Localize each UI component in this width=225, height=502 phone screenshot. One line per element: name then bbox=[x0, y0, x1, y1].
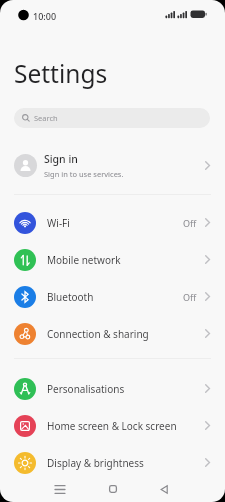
staticText: Connection & sharing bbox=[47, 327, 149, 341]
staticText: Off bbox=[183, 291, 197, 303]
button[interactable] bbox=[101, 477, 125, 501]
staticText: Wi-Fi bbox=[47, 216, 70, 230]
staticText: Personalisations bbox=[47, 382, 125, 396]
staticText: Home screen & Lock screen bbox=[47, 419, 177, 433]
staticText: Display & brightness bbox=[47, 456, 144, 470]
button[interactable] bbox=[48, 477, 72, 501]
staticText: Off bbox=[183, 217, 197, 229]
button[interactable]: Bluetooth bbox=[0, 278, 225, 315]
button[interactable] bbox=[152, 477, 176, 501]
button[interactable]: Connection & sharing bbox=[0, 315, 225, 352]
button[interactable]: Personalisations bbox=[0, 370, 225, 407]
button[interactable]: Sign in bbox=[0, 143, 225, 187]
button[interactable]: Display & brightness bbox=[0, 444, 225, 481]
staticText: Sign in to use services. bbox=[44, 169, 124, 179]
staticText: Search bbox=[34, 113, 58, 123]
button[interactable]: Mobile network bbox=[0, 241, 225, 278]
button[interactable]: Search bbox=[14, 108, 210, 128]
staticText: Settings bbox=[14, 57, 108, 90]
staticText: Bluetooth bbox=[47, 290, 94, 304]
staticText: Sign in bbox=[44, 152, 78, 166]
staticText: Mobile network bbox=[47, 253, 121, 267]
staticText: 10:00 bbox=[33, 10, 57, 22]
button[interactable]: Wi-Fi bbox=[0, 204, 225, 241]
button[interactable]: Home screen & Lock screen bbox=[0, 407, 225, 444]
